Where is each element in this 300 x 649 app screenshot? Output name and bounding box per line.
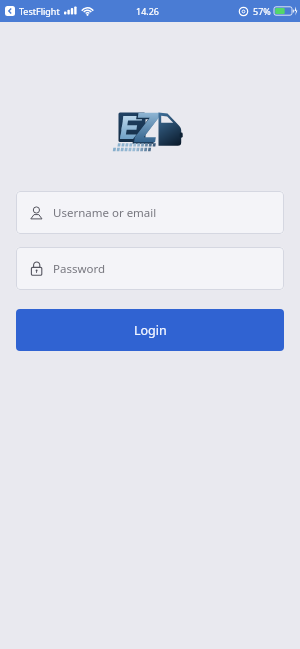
staticText: Password bbox=[53, 261, 106, 277]
staticText: TestFlight bbox=[19, 5, 60, 17]
button[interactable]: Username or email bbox=[16, 191, 284, 234]
button[interactable]: Password bbox=[16, 247, 284, 290]
staticText: 57% bbox=[253, 5, 271, 17]
staticText: 14.26 bbox=[136, 5, 160, 17]
staticText: Login bbox=[134, 322, 167, 339]
button[interactable]: Login bbox=[16, 309, 284, 351]
staticText: Username or email bbox=[53, 205, 157, 221]
